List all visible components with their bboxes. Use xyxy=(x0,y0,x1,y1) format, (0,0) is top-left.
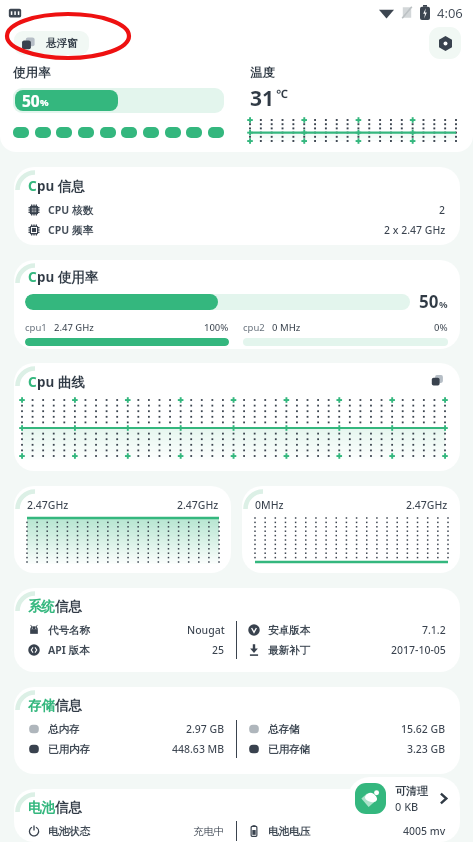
button[interactable]: Expand chart xyxy=(426,369,448,391)
staticText: 总内存 xyxy=(48,723,80,736)
staticText: % xyxy=(40,96,49,109)
staticText: 2.47GHz xyxy=(406,498,448,512)
staticText: 可清理 xyxy=(395,784,428,798)
staticText: 4005 mv xyxy=(403,824,446,838)
staticText: 3.23 GB xyxy=(407,742,446,756)
button[interactable]: API 版本 xyxy=(28,640,225,660)
staticText: cpu1 xyxy=(25,321,47,334)
staticText: 系统 xyxy=(28,598,55,615)
staticText: 温度 xyxy=(250,65,275,81)
staticText: 代号名称 xyxy=(48,624,90,637)
staticText: 7.1.2 xyxy=(422,623,446,637)
staticText: pu 使用率 xyxy=(37,268,99,286)
staticText: 0% xyxy=(434,321,448,334)
staticText: 2 xyxy=(439,203,446,217)
button[interactable]: 总内存 xyxy=(28,719,225,739)
button[interactable]: Settings xyxy=(429,27,461,59)
staticText: 2.47 GHz xyxy=(54,321,94,334)
button[interactable]: 电池电压 xyxy=(248,821,446,841)
button[interactable]: 可清理 xyxy=(348,777,460,820)
button[interactable]: 安卓版本 xyxy=(248,620,446,640)
staticText: cpu2 xyxy=(243,321,265,334)
staticText: 448.63 MB xyxy=(172,742,225,756)
button[interactable]: 最新补丁 xyxy=(248,640,446,660)
button[interactable]: 已用存储 xyxy=(248,739,446,759)
staticText: 100% xyxy=(204,321,229,334)
staticText: 2.47GHz xyxy=(27,498,69,512)
button[interactable]: 悬浮窗 xyxy=(14,31,89,55)
staticText: 2 x 2.47 GHz xyxy=(384,223,446,237)
staticText: C xyxy=(28,373,37,391)
staticText: C xyxy=(28,268,37,286)
button[interactable]: CPU 频率 xyxy=(28,220,446,240)
staticText: C xyxy=(28,177,37,195)
staticText: 0 KB xyxy=(395,799,419,814)
staticText: API 版本 xyxy=(48,643,90,657)
staticText: 总存储 xyxy=(268,723,300,736)
button[interactable]: 电池状态 xyxy=(28,821,225,841)
button[interactable]: 已用内存 xyxy=(28,739,225,759)
button[interactable]: 代号名称 xyxy=(28,620,225,640)
staticText: pu 曲线 xyxy=(37,373,85,391)
staticText: 25 xyxy=(212,643,225,657)
staticText: 4:06 xyxy=(437,4,463,22)
staticText: 50 xyxy=(22,90,40,111)
staticText: CPU 频率 xyxy=(48,223,93,237)
staticText: % xyxy=(439,298,448,311)
staticText: 电池状态 xyxy=(48,825,90,838)
staticText: 已用存储 xyxy=(268,743,310,756)
staticText: 2.47GHz xyxy=(177,498,219,512)
staticText: 2017-10-05 xyxy=(391,643,446,657)
staticText: 电池电压 xyxy=(268,825,310,838)
staticText: 信息 xyxy=(55,598,82,615)
staticText: pu 信息 xyxy=(37,177,85,195)
staticText: 0 MHz xyxy=(272,321,301,334)
button[interactable]: 总存储 xyxy=(248,719,446,739)
staticText: 安卓版本 xyxy=(268,624,310,637)
staticText: 充电中 xyxy=(193,825,225,838)
staticText: 2.97 GB xyxy=(186,722,225,736)
staticText: 存储 xyxy=(28,697,55,714)
staticText: 15.62 GB xyxy=(401,722,446,736)
staticText: CPU 核数 xyxy=(48,203,93,217)
button[interactable]: CPU 核数 xyxy=(28,200,446,220)
staticText: 最新补丁 xyxy=(268,644,310,657)
staticText: 使用率 xyxy=(13,65,51,81)
staticText: 信息 xyxy=(55,697,82,714)
staticText: ℃ xyxy=(276,86,288,102)
staticText: Nougat xyxy=(187,623,225,637)
staticText: 悬浮窗 xyxy=(46,37,78,50)
staticText: 信息 xyxy=(55,799,82,816)
staticText: 31 xyxy=(250,84,275,113)
staticText: 电池 xyxy=(28,799,55,816)
staticText: 0MHz xyxy=(255,498,284,512)
staticText: 已用内存 xyxy=(48,743,90,756)
staticText: 50 xyxy=(419,290,439,313)
